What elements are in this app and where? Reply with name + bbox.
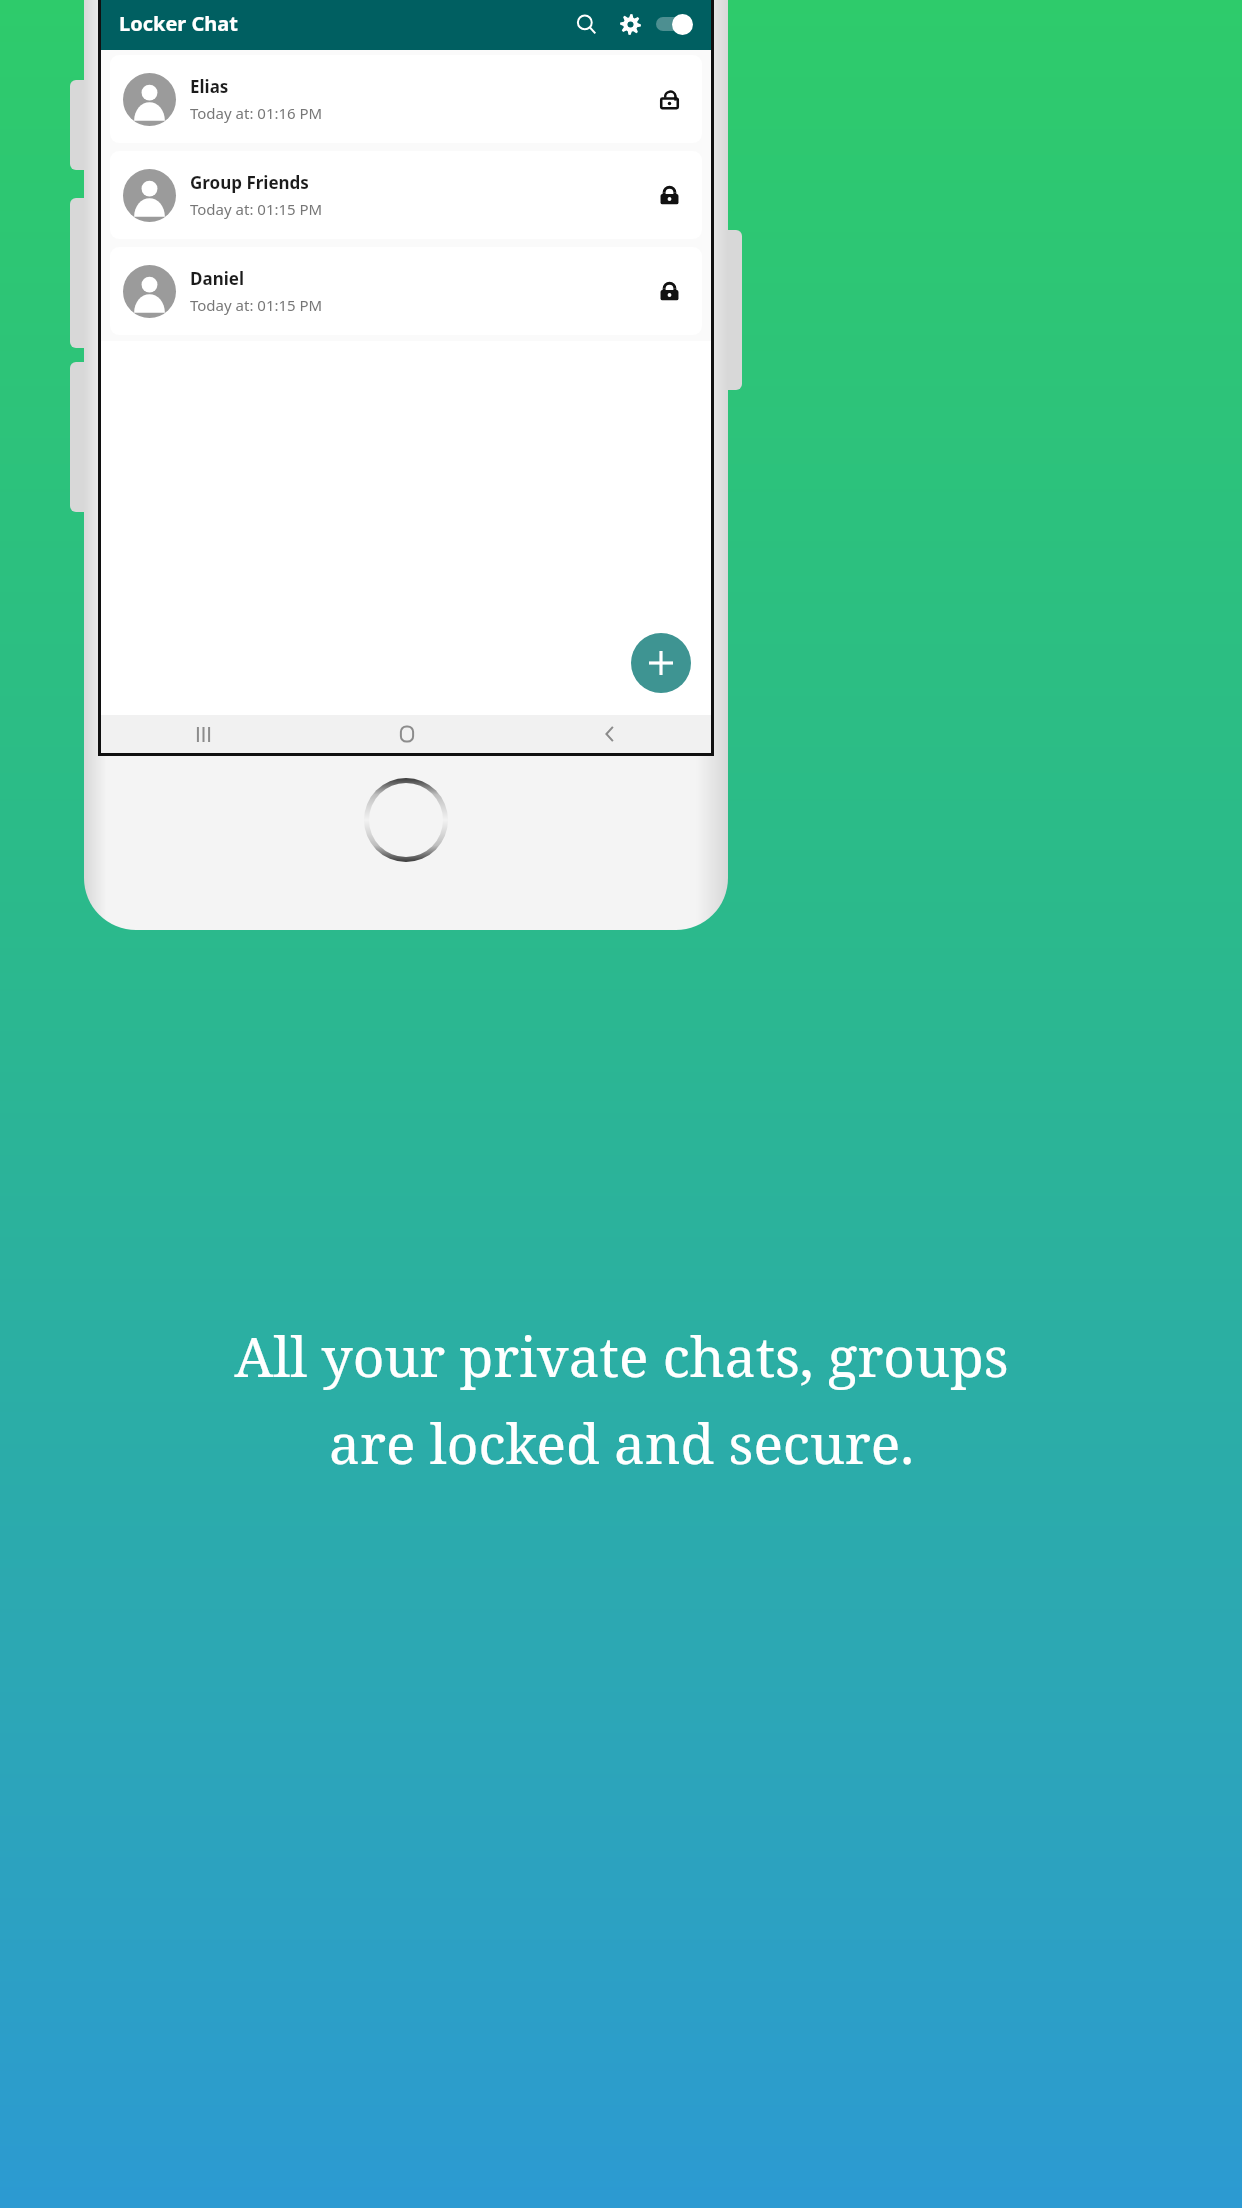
staticText: All your private chats, groups: [234, 1318, 1009, 1393]
staticText: Locker Chat: [119, 10, 238, 37]
button[interactable]: Toggle lock: [653, 9, 699, 39]
button[interactable]: Search: [567, 5, 605, 43]
staticText: Today at: 01:16 PM: [190, 103, 323, 123]
button[interactable]: Elias: [110, 55, 702, 143]
button[interactable]: Locked: [649, 271, 689, 311]
staticText: Daniel: [190, 267, 244, 290]
button[interactable]: Daniel: [110, 247, 702, 335]
button[interactable]: Unlocked: [649, 79, 689, 119]
button[interactable]: Recents: [101, 715, 305, 753]
staticText: Elias: [190, 75, 229, 98]
staticText: Group Friends: [190, 171, 309, 194]
button[interactable]: Home: [305, 715, 508, 753]
button[interactable]: Back: [508, 715, 711, 753]
button[interactable]: Locked: [649, 175, 689, 215]
staticText: Today at: 01:15 PM: [190, 199, 323, 219]
button[interactable]: Settings: [611, 5, 649, 43]
staticText: Today at: 01:15 PM: [190, 295, 323, 315]
button[interactable]: Group Friends: [110, 151, 702, 239]
staticText: are locked and secure.: [329, 1405, 914, 1480]
button[interactable]: New chat: [631, 633, 691, 693]
